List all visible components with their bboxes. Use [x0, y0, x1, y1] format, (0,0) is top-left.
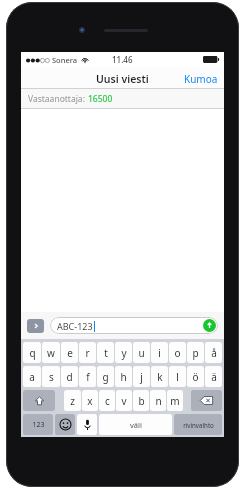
staticText: p [192, 346, 199, 360]
button[interactable]: f [79, 366, 96, 387]
button[interactable]: l [169, 366, 186, 387]
staticText: 123 [32, 420, 45, 430]
button[interactable]: w [42, 342, 60, 363]
staticText: r [85, 346, 90, 360]
staticText: Vastaanottaja: [28, 93, 88, 105]
staticText: o [174, 346, 181, 360]
button[interactable]: b [133, 390, 149, 411]
button[interactable]: Vastaanottaja: [21, 89, 224, 109]
button[interactable]: t [97, 342, 114, 363]
staticText: k [157, 370, 163, 384]
button[interactable]: Dictation [77, 414, 97, 435]
button[interactable]: Emoji [55, 414, 75, 435]
button[interactable]: y [115, 342, 132, 363]
button[interactable]: j [133, 366, 150, 387]
staticText: x [87, 394, 93, 408]
staticText: l [176, 370, 179, 384]
staticText: väli [130, 420, 142, 430]
staticText: i [158, 346, 161, 360]
staticText: n [155, 394, 162, 408]
button[interactable]: i [151, 342, 168, 363]
button[interactable]: Kumoa [178, 67, 224, 89]
staticText: g [102, 370, 109, 384]
button[interactable]: p [187, 342, 204, 363]
button[interactable]: x [82, 390, 98, 411]
button[interactable]: o [169, 342, 186, 363]
staticText: c [105, 394, 110, 408]
button[interactable]: z [64, 390, 81, 411]
staticText: v [121, 394, 127, 408]
button[interactable]: Backspace [191, 390, 222, 411]
staticText: 11.46 [112, 54, 133, 65]
button[interactable]: väli [99, 414, 172, 435]
staticText: q [29, 346, 36, 360]
button[interactable]: n [150, 390, 166, 411]
staticText: å [211, 346, 217, 360]
button[interactable]: k [151, 366, 168, 387]
staticText: u [138, 346, 145, 360]
button[interactable]: Send [203, 319, 216, 332]
button[interactable]: h [115, 366, 132, 387]
staticText: h [120, 370, 127, 384]
staticText: Sonera [52, 55, 78, 65]
staticText: s [49, 370, 54, 384]
staticText: e [67, 346, 73, 360]
button[interactable]: ä [205, 366, 222, 387]
staticText: z [70, 394, 75, 408]
staticText: ö [192, 370, 199, 384]
staticText: j [140, 370, 143, 384]
staticText: w [47, 346, 55, 360]
button[interactable]: 123 [23, 414, 53, 435]
staticText: Uusi viesti [96, 72, 149, 86]
staticText: ABC-123 [57, 320, 93, 332]
button[interactable]: g [97, 366, 114, 387]
button[interactable]: c [99, 390, 115, 411]
staticText: rivinvaihto [183, 421, 214, 429]
button[interactable]: s [42, 366, 60, 387]
staticText: a [29, 370, 35, 384]
button[interactable]: v [116, 390, 132, 411]
staticText: ä [211, 370, 217, 384]
staticText: b [138, 394, 145, 408]
staticText: y [121, 346, 127, 360]
button[interactable]: å [205, 342, 222, 363]
button[interactable]: m [167, 390, 183, 411]
staticText: Kumoa [184, 72, 218, 86]
button[interactable]: u [133, 342, 150, 363]
button[interactable]: q [23, 342, 41, 363]
button[interactable]: Shift [23, 390, 55, 411]
button[interactable]: e [61, 342, 78, 363]
button[interactable]: rivinvaihto [174, 414, 222, 435]
staticText: d [66, 370, 73, 384]
button[interactable]: d [61, 366, 78, 387]
button[interactable]: Expand attachments [27, 319, 44, 333]
staticText: m [170, 394, 180, 408]
staticText: 16500 [88, 93, 113, 105]
button[interactable]: ABC-123 [50, 317, 218, 334]
button[interactable]: ö [187, 366, 204, 387]
button[interactable]: a [23, 366, 41, 387]
staticText: f [86, 370, 90, 384]
button[interactable]: r [79, 342, 96, 363]
staticText: t [104, 346, 108, 360]
